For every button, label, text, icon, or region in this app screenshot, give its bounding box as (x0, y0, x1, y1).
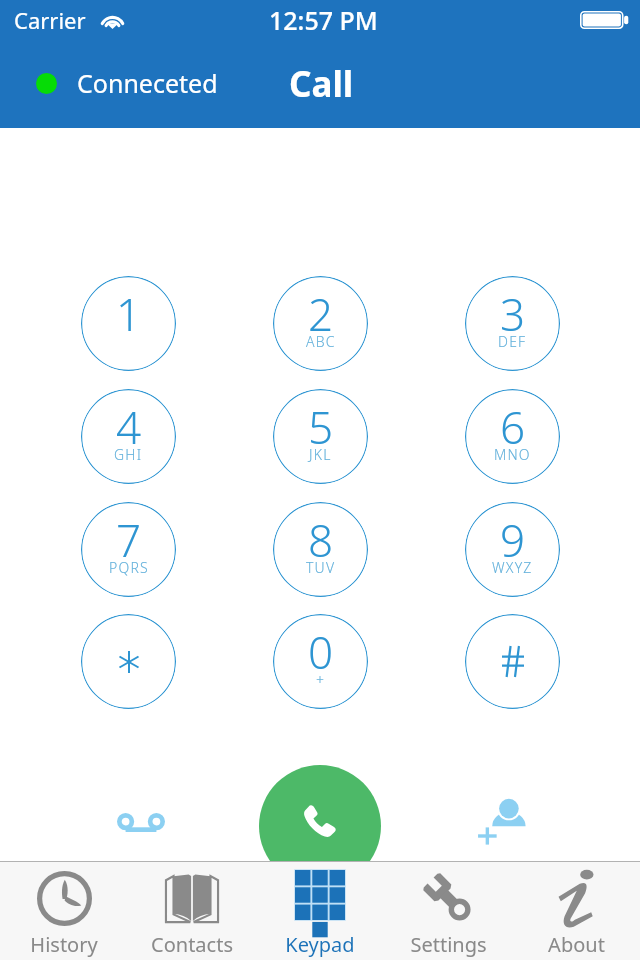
staticText: MNO (494, 445, 531, 464)
staticText: 9 (500, 510, 526, 570)
staticText: Contacts (151, 931, 233, 958)
button[interactable]: History (0, 861, 128, 960)
staticText: 2 (308, 284, 334, 344)
button[interactable]: Call (259, 765, 381, 887)
button[interactable]: 5 (273, 389, 368, 484)
staticText: Settings (410, 931, 487, 958)
staticText: 7 (116, 510, 142, 570)
staticText: Carrier (14, 5, 86, 35)
staticText: PQRS (109, 558, 149, 577)
staticText: 6 (500, 397, 526, 457)
staticText: Keypad (285, 931, 355, 958)
staticText: 1 (116, 284, 142, 344)
staticText: + (316, 670, 326, 689)
staticText: 3 (500, 284, 526, 344)
staticText: Call (289, 60, 354, 108)
staticText: DEF (498, 332, 527, 351)
button[interactable]: Settings (384, 861, 512, 960)
staticText: 12:57 PM (269, 3, 378, 37)
button[interactable]: About (512, 861, 640, 960)
staticText: JKL (309, 445, 332, 464)
staticText: Conneceted (77, 66, 218, 100)
button[interactable]: 7 (81, 502, 176, 597)
staticText: 5 (308, 397, 334, 457)
button[interactable]: 6 (465, 389, 560, 484)
button[interactable]: 8 (273, 502, 368, 597)
staticText: About (548, 931, 605, 958)
staticText: ABC (306, 332, 336, 351)
button[interactable]: 4 (81, 389, 176, 484)
button[interactable]: 1 (81, 276, 176, 371)
button[interactable]: Add contact (466, 786, 538, 858)
staticText: WXYZ (492, 558, 533, 577)
button[interactable]: 9 (465, 502, 560, 597)
button[interactable] (81, 614, 176, 709)
button[interactable]: 2 (273, 276, 368, 371)
button[interactable]: 3 (465, 276, 560, 371)
staticText: 4 (116, 397, 142, 457)
staticText: 8 (308, 510, 334, 570)
staticText: GHI (114, 445, 143, 464)
button[interactable]: Contacts (128, 861, 256, 960)
staticText: TUV (306, 558, 336, 577)
button[interactable]: 0 (273, 614, 368, 709)
button[interactable]: Keypad (256, 861, 384, 960)
staticText: History (30, 931, 98, 958)
staticText: 0 (308, 622, 334, 682)
button[interactable] (465, 614, 560, 709)
button[interactable]: Voicemail (105, 786, 177, 858)
